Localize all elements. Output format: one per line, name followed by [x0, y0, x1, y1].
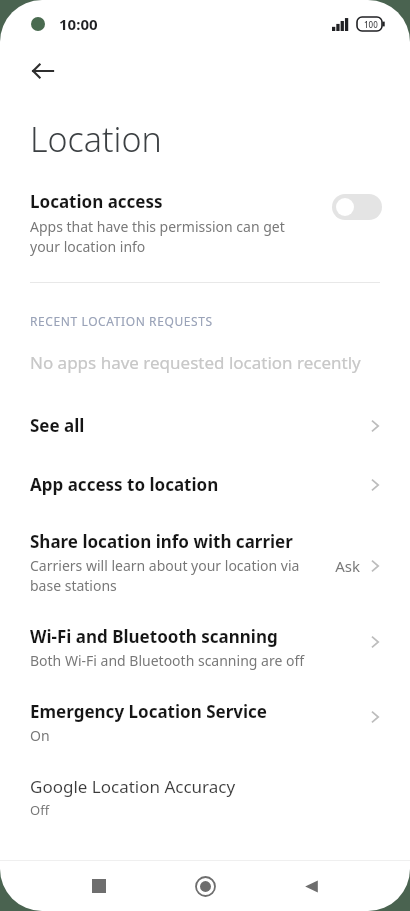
- staticText: Location: [30, 116, 162, 162]
- button[interactable]: Back: [287, 862, 335, 910]
- button[interactable]: Google Location Accuracy: [0, 759, 410, 833]
- staticText: RECENT LOCATION REQUESTS: [30, 313, 213, 329]
- button[interactable]: Location access: [0, 176, 410, 264]
- button[interactable]: Location access toggle: [332, 194, 382, 220]
- staticText: No apps have requested location recently: [30, 351, 361, 374]
- staticText: Ask: [335, 556, 360, 576]
- staticText: Wi-Fi and Bluetooth scanning: [30, 625, 278, 648]
- staticText: On: [30, 726, 50, 745]
- staticText: Share location info with carrier: [30, 530, 293, 553]
- staticText: Carriers will learn about your location …: [30, 556, 300, 595]
- button[interactable]: See all: [0, 396, 410, 455]
- button[interactable]: Recents: [75, 862, 123, 910]
- button[interactable]: Back: [20, 48, 66, 94]
- staticText: See all: [30, 414, 366, 437]
- staticText: Off: [30, 801, 50, 819]
- button[interactable]: Wi-Fi and Bluetooth scanning: [0, 609, 410, 684]
- staticText: App access to location: [30, 473, 366, 496]
- staticText: Apps that have this permission can get y…: [30, 217, 285, 256]
- staticText: 100: [364, 19, 378, 30]
- button[interactable]: Emergency Location Service: [0, 684, 410, 759]
- staticText: Both Wi-Fi and Bluetooth scanning are of…: [30, 651, 305, 670]
- button[interactable]: Home: [181, 862, 229, 910]
- button[interactable]: App access to location: [0, 455, 410, 514]
- staticText: Emergency Location Service: [30, 700, 267, 723]
- staticText: Location access: [30, 190, 163, 213]
- staticText: Google Location Accuracy: [30, 775, 236, 798]
- staticText: 10:00: [59, 14, 98, 34]
- button[interactable]: Share location info with carrier: [0, 514, 410, 609]
